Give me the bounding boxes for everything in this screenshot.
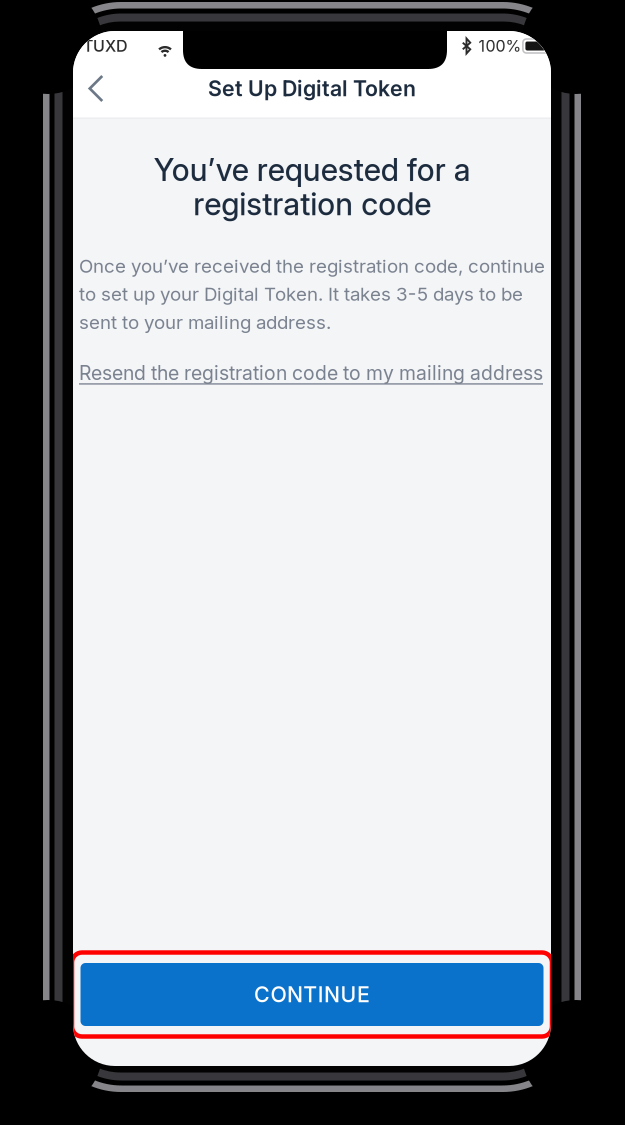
staticText: 100%	[478, 36, 521, 56]
button[interactable]: Resend the registration code to my maili…	[79, 356, 545, 390]
staticText: Once you’ve received the registration co…	[79, 255, 545, 333]
staticText: Resend the registration code to my maili…	[79, 361, 543, 385]
staticText: You’ve requested for a	[153, 151, 470, 188]
button[interactable]: CONTINUE	[80, 963, 543, 1026]
staticText: registration code	[193, 185, 431, 223]
staticText: CONTINUE	[254, 982, 370, 1007]
button[interactable]: Back	[74, 66, 118, 110]
staticText: TUXD	[83, 36, 128, 56]
staticText: Set Up Digital Token	[208, 76, 416, 101]
